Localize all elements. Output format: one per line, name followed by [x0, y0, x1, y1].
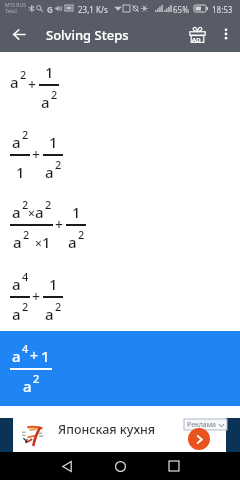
staticText: 1 [16, 162, 25, 178]
staticText: 1 [41, 346, 50, 363]
button[interactable]: More options [214, 16, 238, 52]
staticText: AD [192, 36, 201, 44]
staticText: × [35, 235, 42, 251]
staticText: 65% [173, 4, 189, 15]
button[interactable]: Open advertisement [188, 428, 210, 450]
staticText: a [35, 202, 44, 219]
staticText: G [47, 4, 53, 15]
button[interactable]: Navigate up [7, 16, 31, 52]
staticText: 1 [49, 274, 58, 291]
staticText: a [12, 202, 21, 219]
button[interactable]: Home [100, 452, 140, 480]
staticText: + [30, 346, 39, 363]
staticText: 2 [23, 227, 30, 242]
staticText: a [10, 72, 19, 92]
staticText: 1 [49, 132, 58, 149]
staticText: a [12, 274, 21, 291]
staticText: 2 [51, 87, 58, 102]
staticText: 1 [45, 62, 54, 79]
staticText: 2 [20, 67, 27, 82]
staticText: 2 [22, 299, 29, 314]
staticText: + [32, 145, 41, 164]
staticText: a [45, 304, 54, 321]
staticText: MTS RUS [5, 2, 26, 9]
staticText: + [28, 75, 37, 94]
staticText: 2 [55, 299, 62, 314]
staticText: a [45, 162, 54, 178]
button[interactable]: Watch ad for reward [184, 16, 210, 52]
staticText: 2 [45, 197, 52, 212]
staticText: 2 [78, 227, 85, 242]
staticText: Японская кухня [58, 421, 156, 438]
staticText: + [32, 287, 41, 306]
staticText: Реклама [187, 420, 217, 430]
staticText: 4 [22, 269, 29, 284]
staticText: × [28, 205, 35, 221]
staticText: a [41, 92, 50, 108]
staticText: 1 [42, 232, 51, 249]
staticText: Tele2 [5, 8, 18, 15]
staticText: + [55, 215, 64, 234]
staticText: a [13, 232, 22, 249]
staticText: a [12, 304, 21, 321]
staticText: a [12, 132, 21, 149]
staticText: 23,1 K/s [78, 4, 108, 15]
button[interactable]: Японская кухня [0, 418, 240, 452]
staticText: Solving Steps [46, 26, 129, 44]
staticText: 2 [33, 371, 40, 386]
staticText: 18:53 [212, 4, 233, 15]
button[interactable]: Back [47, 452, 87, 480]
staticText: 4 [22, 341, 29, 356]
staticText: a [12, 346, 21, 363]
staticText: 2 [55, 157, 62, 172]
staticText: 2 [22, 127, 29, 142]
button[interactable]: Реклама [184, 419, 227, 430]
staticText: 2 [22, 197, 29, 212]
button[interactable]: Recent apps [154, 452, 194, 480]
button[interactable]: a [0, 331, 240, 406]
staticText: a [23, 376, 32, 392]
staticText: a [68, 232, 77, 249]
staticText: 1 [72, 202, 81, 219]
